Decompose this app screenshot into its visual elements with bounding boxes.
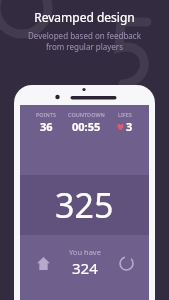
staticText: 325: [55, 182, 114, 228]
staticText: 324: [72, 258, 98, 278]
staticText: LIFES: [118, 111, 132, 118]
staticText: You have: [69, 247, 101, 257]
staticText: POINTS: [36, 111, 56, 118]
staticText: 00:55: [72, 119, 101, 134]
staticText: Developed based on feedback from regular…: [28, 30, 141, 52]
staticText: 36: [40, 119, 53, 134]
button[interactable]: Refresh: [113, 250, 139, 276]
staticText: 3: [126, 119, 133, 134]
button[interactable]: Home: [30, 250, 56, 276]
staticText: COUNTDOWN: [68, 111, 105, 118]
staticText: Revamped design: [34, 9, 135, 25]
